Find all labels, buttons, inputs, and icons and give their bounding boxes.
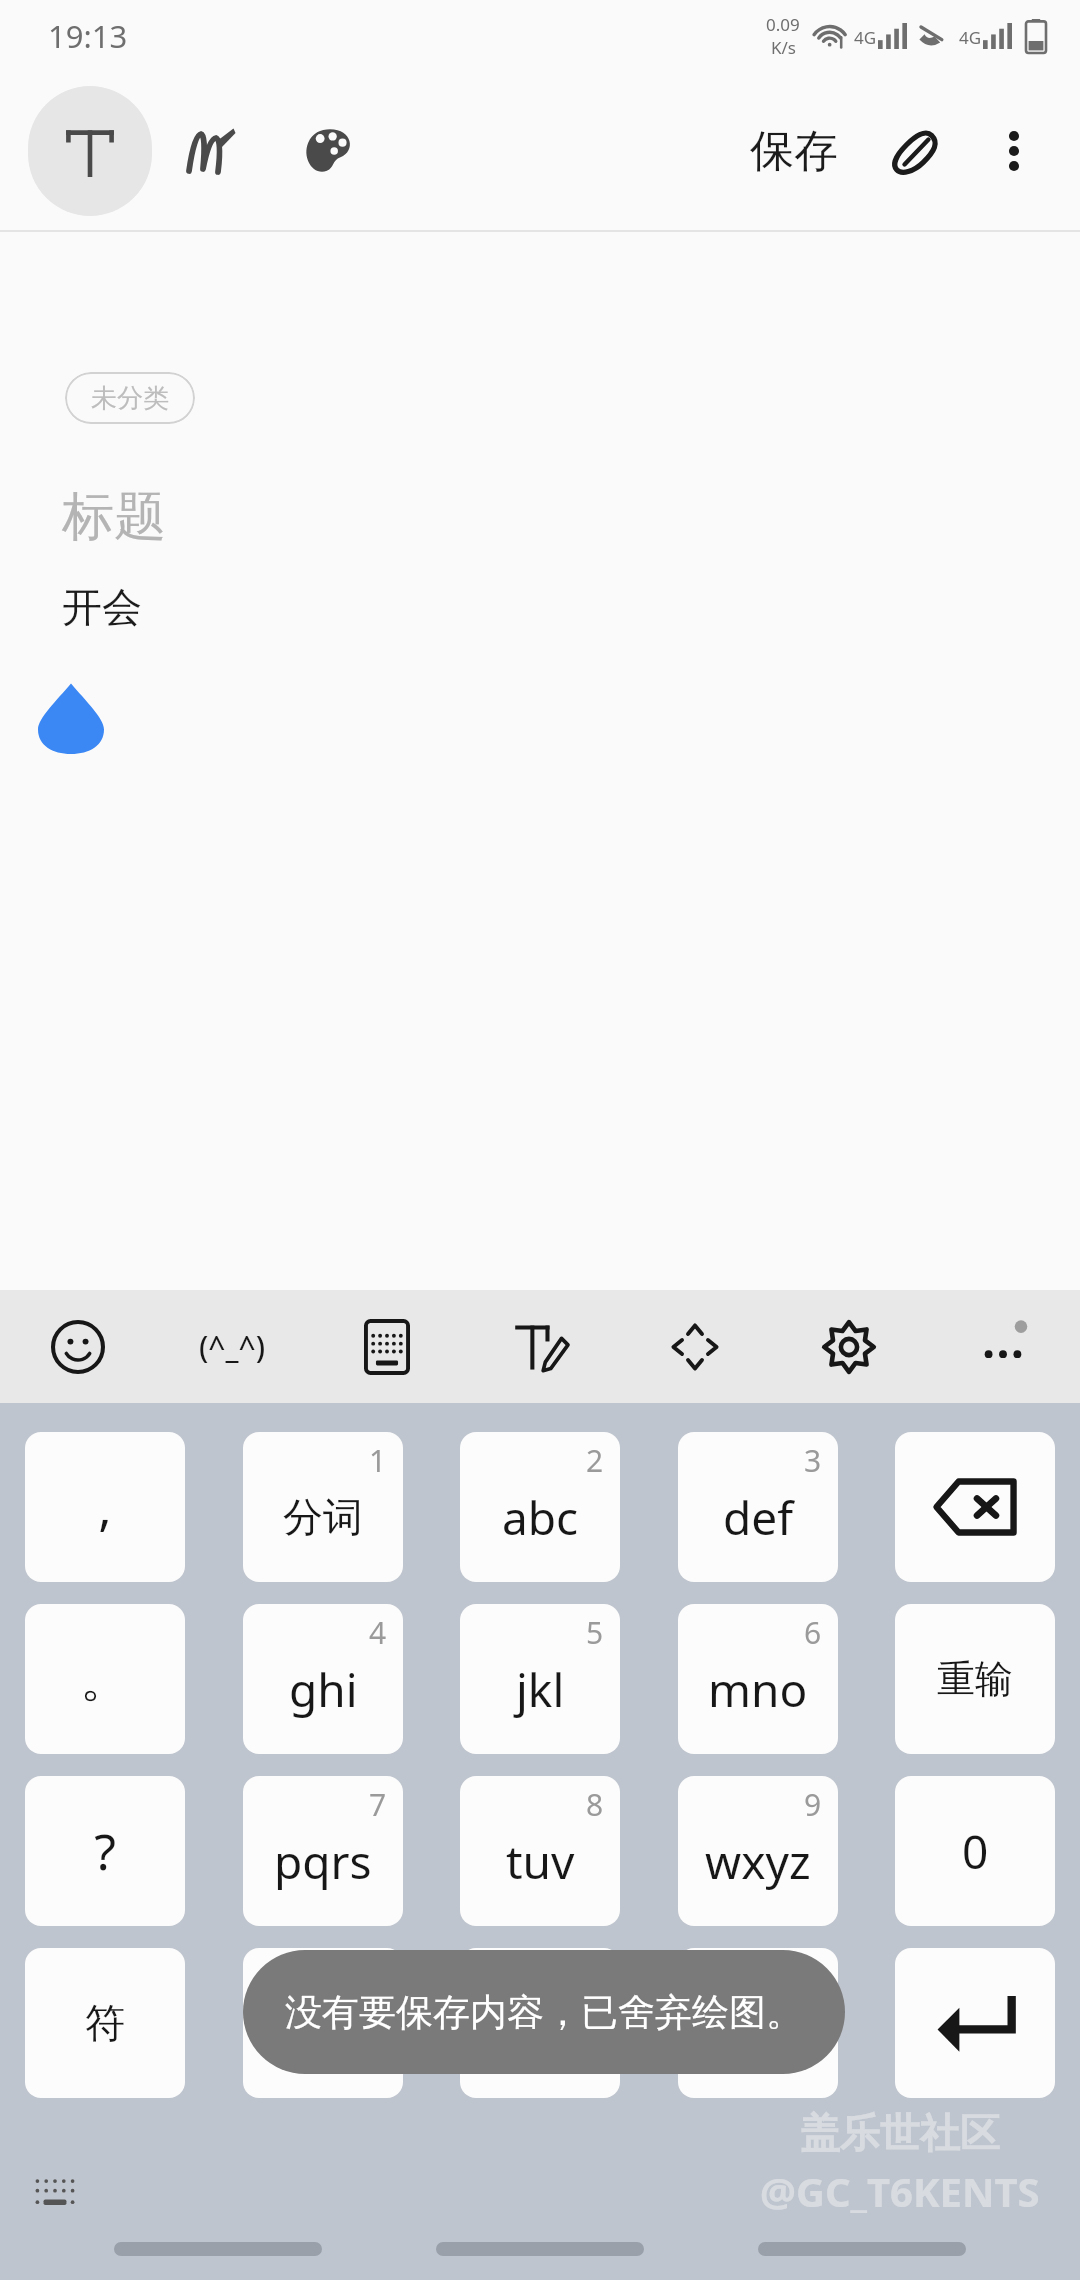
- button[interactable]: 123: [243, 1948, 403, 2098]
- button[interactable]: Palette: [270, 86, 388, 216]
- staticText: 重输: [937, 1655, 1013, 1703]
- staticText: 没有要保存内容，已舍弃绘图。: [285, 1989, 803, 2036]
- staticText: (^_^): [199, 1326, 266, 1367]
- staticText: abc: [502, 1486, 579, 1549]
- button[interactable]: Handwriting: [152, 86, 270, 216]
- button[interactable]: 未分类: [65, 372, 195, 424]
- staticText: 19:13: [48, 15, 128, 57]
- button[interactable]: Handwriting input: [464, 1290, 618, 1403]
- staticText: K/s: [771, 36, 796, 59]
- staticText: mno: [708, 1658, 808, 1721]
- button[interactable]: 0: [895, 1776, 1055, 1926]
- staticText: 4G: [854, 26, 877, 49]
- staticText: 4: [369, 1612, 387, 1653]
- button[interactable]: 2: [460, 1432, 620, 1582]
- button[interactable]: Kaomoji: [155, 1290, 310, 1403]
- button[interactable]: 1: [243, 1432, 403, 1582]
- staticText: 4G: [959, 26, 982, 49]
- button[interactable]: 9: [678, 1776, 838, 1926]
- button[interactable]: 5: [460, 1604, 620, 1754]
- button[interactable]: [678, 1948, 838, 2098]
- staticText: ghi: [289, 1658, 358, 1721]
- button[interactable]: [895, 1432, 1055, 1582]
- button[interactable]: Hide keyboard: [20, 2162, 90, 2222]
- staticText: 未分类: [91, 382, 169, 415]
- button[interactable]: 重输: [895, 1604, 1055, 1754]
- button[interactable]: 6: [678, 1604, 838, 1754]
- staticText: 7: [369, 1784, 387, 1825]
- staticText: pqrs: [274, 1830, 372, 1893]
- staticText: wxyz: [705, 1830, 811, 1893]
- button[interactable]: 符: [25, 1948, 185, 2098]
- staticText: def: [723, 1486, 794, 1549]
- button[interactable]: Attach: [862, 86, 972, 216]
- button[interactable]: [895, 1948, 1055, 2098]
- button[interactable]: More options: [972, 86, 1056, 216]
- staticText: 分词: [283, 1492, 363, 1542]
- button[interactable]: ,: [25, 1432, 185, 1582]
- button[interactable]: 7: [243, 1776, 403, 1926]
- staticText: 9: [804, 1784, 822, 1825]
- staticText: 0.09: [766, 13, 800, 36]
- staticText: 标题: [62, 484, 166, 550]
- staticText: ,: [98, 1473, 112, 1541]
- staticText: 1: [369, 1440, 387, 1481]
- staticText: 2: [586, 1440, 604, 1481]
- button[interactable]: Settings: [772, 1290, 926, 1403]
- button[interactable]: Text mode: [28, 86, 152, 216]
- staticText: 123: [284, 1992, 363, 2055]
- button[interactable]: 。: [25, 1604, 185, 1754]
- button[interactable]: More: [926, 1290, 1080, 1403]
- staticText: 0: [962, 1820, 989, 1883]
- staticText: 盖乐世社区: [800, 2108, 1000, 2158]
- button[interactable]: [460, 1948, 620, 2098]
- button[interactable]: ?: [25, 1776, 185, 1926]
- button[interactable]: Keyboard layout: [310, 1290, 464, 1403]
- staticText: ?: [94, 1817, 116, 1885]
- staticText: 。: [80, 1648, 130, 1711]
- staticText: 开会: [62, 582, 142, 632]
- staticText: jkl: [516, 1658, 565, 1721]
- button[interactable]: Move cursor: [618, 1290, 772, 1403]
- staticText: 保存: [750, 124, 838, 179]
- staticText: 8: [586, 1784, 604, 1825]
- button[interactable]: 4: [243, 1604, 403, 1754]
- button[interactable]: 保存: [726, 86, 862, 216]
- button[interactable]: Emoji: [0, 1290, 155, 1403]
- button[interactable]: 8: [460, 1776, 620, 1926]
- button[interactable]: 3: [678, 1432, 838, 1582]
- staticText: 符: [85, 1998, 125, 2048]
- staticText: 5: [586, 1612, 604, 1653]
- staticText: @GC_T6KENTS: [760, 2164, 1040, 2218]
- staticText: 3: [804, 1440, 822, 1481]
- staticText: tuv: [506, 1830, 575, 1893]
- staticText: 6: [804, 1612, 822, 1653]
